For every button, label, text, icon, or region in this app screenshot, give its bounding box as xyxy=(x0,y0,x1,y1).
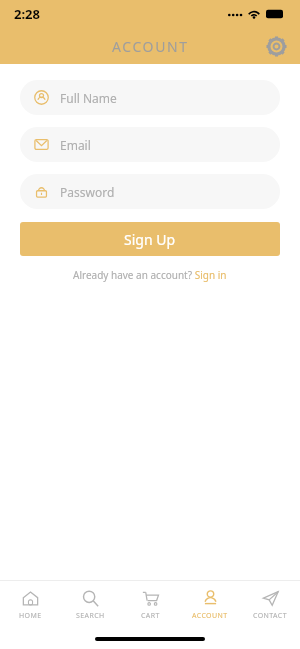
staticText: SEARCH xyxy=(76,611,105,621)
staticText: HOME xyxy=(19,611,42,621)
button[interactable]: Settings xyxy=(260,30,292,62)
staticText: CART xyxy=(141,611,160,621)
button[interactable]: HOME xyxy=(0,581,60,629)
button[interactable]: Already have an account? Sign in xyxy=(73,268,227,282)
button[interactable]: Sign Up xyxy=(20,222,280,256)
button[interactable]: Email xyxy=(20,127,280,162)
staticText: ACCOUNT xyxy=(112,37,189,56)
staticText: Sign Up xyxy=(124,230,176,249)
staticText: Email xyxy=(60,137,91,153)
staticText: ACCOUNT xyxy=(192,611,228,621)
staticText: Password xyxy=(60,184,115,200)
button[interactable]: SEARCH xyxy=(60,581,120,629)
staticText: Full Name xyxy=(60,90,117,106)
button[interactable]: Full Name xyxy=(20,80,280,115)
button[interactable]: CONTACT xyxy=(240,581,300,629)
staticText: 2:28 xyxy=(14,5,40,23)
staticText: CONTACT xyxy=(253,611,287,621)
button[interactable]: ACCOUNT xyxy=(180,581,240,629)
button[interactable]: Password xyxy=(20,174,280,209)
staticText: Already have an account? Sign in xyxy=(73,268,227,282)
button[interactable]: CART xyxy=(120,581,180,629)
